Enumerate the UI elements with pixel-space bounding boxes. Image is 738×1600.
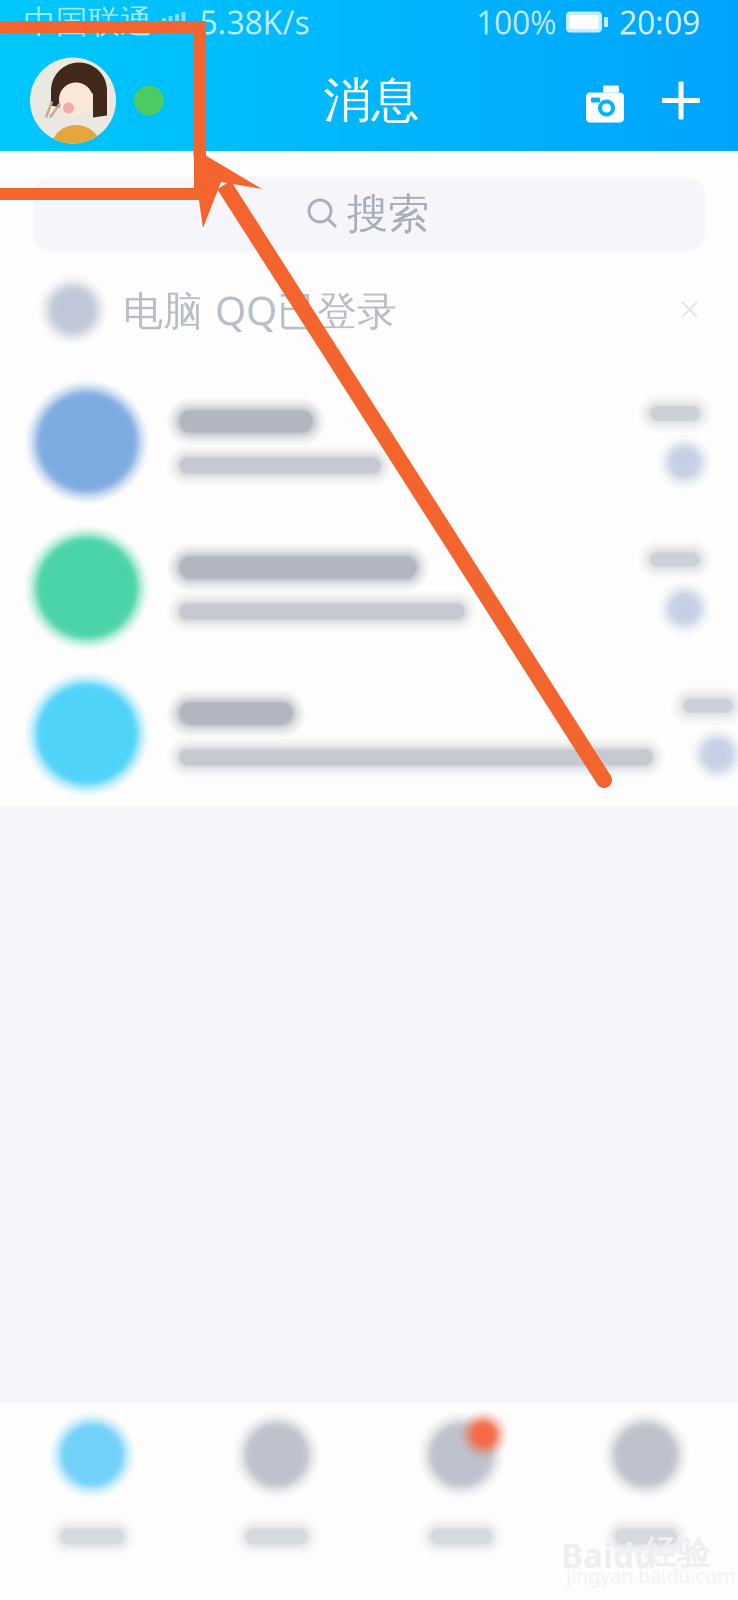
button[interactable]: Contacts <box>184 1403 369 1600</box>
staticText: 经验 <box>644 1533 710 1574</box>
button[interactable]: Conversation <box>0 515 738 661</box>
staticText: 中国联通 <box>24 2 152 42</box>
staticText: 20:09 <box>619 1 700 43</box>
staticText: 电脑 QQ已登录 <box>123 283 397 336</box>
button[interactable]: Conversation <box>0 661 738 807</box>
button[interactable]: Search <box>33 177 705 251</box>
button[interactable]: Profile <box>553 1403 738 1600</box>
staticText: Baidu <box>561 1533 656 1577</box>
button[interactable]: PC QQ signed in <box>0 251 738 369</box>
staticText: 5.38K/s <box>199 1 309 43</box>
staticText: jingyan.baidu.com <box>566 1562 736 1589</box>
button[interactable]: Add <box>643 50 719 151</box>
button[interactable]: Camera <box>567 50 643 151</box>
staticText: 消息 <box>323 71 419 130</box>
button[interactable]: Discover <box>369 1403 553 1600</box>
button[interactable]: Messages <box>0 1403 184 1600</box>
button[interactable]: Conversation <box>0 369 738 515</box>
button[interactable]: Profile <box>0 50 176 151</box>
staticText: 搜索 <box>347 189 429 239</box>
staticText: 100% <box>476 1 557 43</box>
